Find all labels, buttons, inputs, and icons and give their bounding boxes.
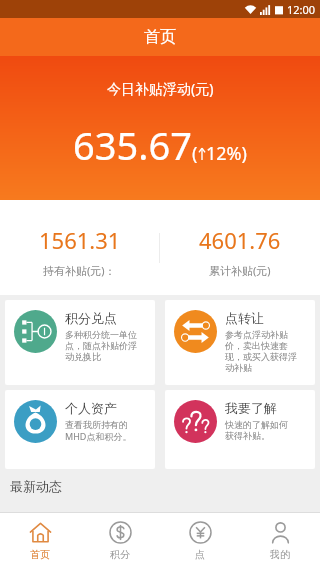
staticText: 快速的了解如何 bbox=[225, 419, 288, 430]
staticText: MHD点和积分。 bbox=[65, 430, 132, 442]
staticText: 积分兑点 bbox=[65, 310, 117, 326]
button[interactable]: 1561.31 bbox=[0, 200, 159, 295]
staticText: 参考点浮动补贴 bbox=[225, 329, 288, 340]
staticText: 持有补贴(元)： bbox=[43, 263, 116, 278]
button[interactable]: 我的 bbox=[240, 513, 320, 569]
staticText: 获得补贴。 bbox=[225, 430, 270, 441]
staticText: 多种积分统一单位 bbox=[65, 329, 137, 340]
staticText: ( bbox=[192, 141, 198, 166]
staticText: 动兑换比 bbox=[65, 351, 101, 362]
staticText: 点转让 bbox=[225, 310, 264, 326]
button[interactable]: 首页 bbox=[0, 513, 80, 569]
button[interactable]: 点转让 bbox=[165, 300, 315, 385]
button[interactable]: 积分兑点 bbox=[5, 300, 155, 385]
staticText: 首页 bbox=[144, 27, 176, 47]
button[interactable]: 点 bbox=[160, 513, 240, 569]
button[interactable]: 我要了解 bbox=[165, 390, 315, 469]
staticText: 现，或买入获得浮 bbox=[225, 351, 297, 362]
staticText: 累计补贴(元) bbox=[209, 263, 271, 278]
staticText: 我要了解 bbox=[225, 400, 277, 416]
staticText: 查看我所持有的 bbox=[65, 419, 128, 430]
staticText: 12:00 bbox=[287, 2, 316, 17]
staticText: 1561.31 bbox=[39, 225, 121, 255]
button[interactable]: 个人资产 bbox=[5, 390, 155, 469]
button[interactable]: 积分 bbox=[80, 513, 160, 569]
staticText: 4601.76 bbox=[199, 225, 281, 255]
staticText: 635.67 bbox=[73, 119, 192, 171]
staticText: 最新动态 bbox=[10, 478, 62, 494]
staticText: 点 bbox=[195, 548, 205, 561]
staticText: 今日补贴浮动(元) bbox=[107, 79, 214, 98]
staticText: 积分 bbox=[110, 548, 130, 561]
staticText: 12%) bbox=[206, 141, 247, 166]
staticText: 动补贴 bbox=[225, 362, 252, 373]
button[interactable]: 4601.76 bbox=[160, 200, 320, 295]
staticText: 我的 bbox=[270, 548, 290, 561]
staticText: 点，随点补贴价浮 bbox=[65, 340, 137, 351]
staticText: 首页 bbox=[30, 548, 50, 561]
staticText: 个人资产 bbox=[65, 400, 117, 416]
staticText: 价，卖出快速套 bbox=[225, 340, 288, 351]
